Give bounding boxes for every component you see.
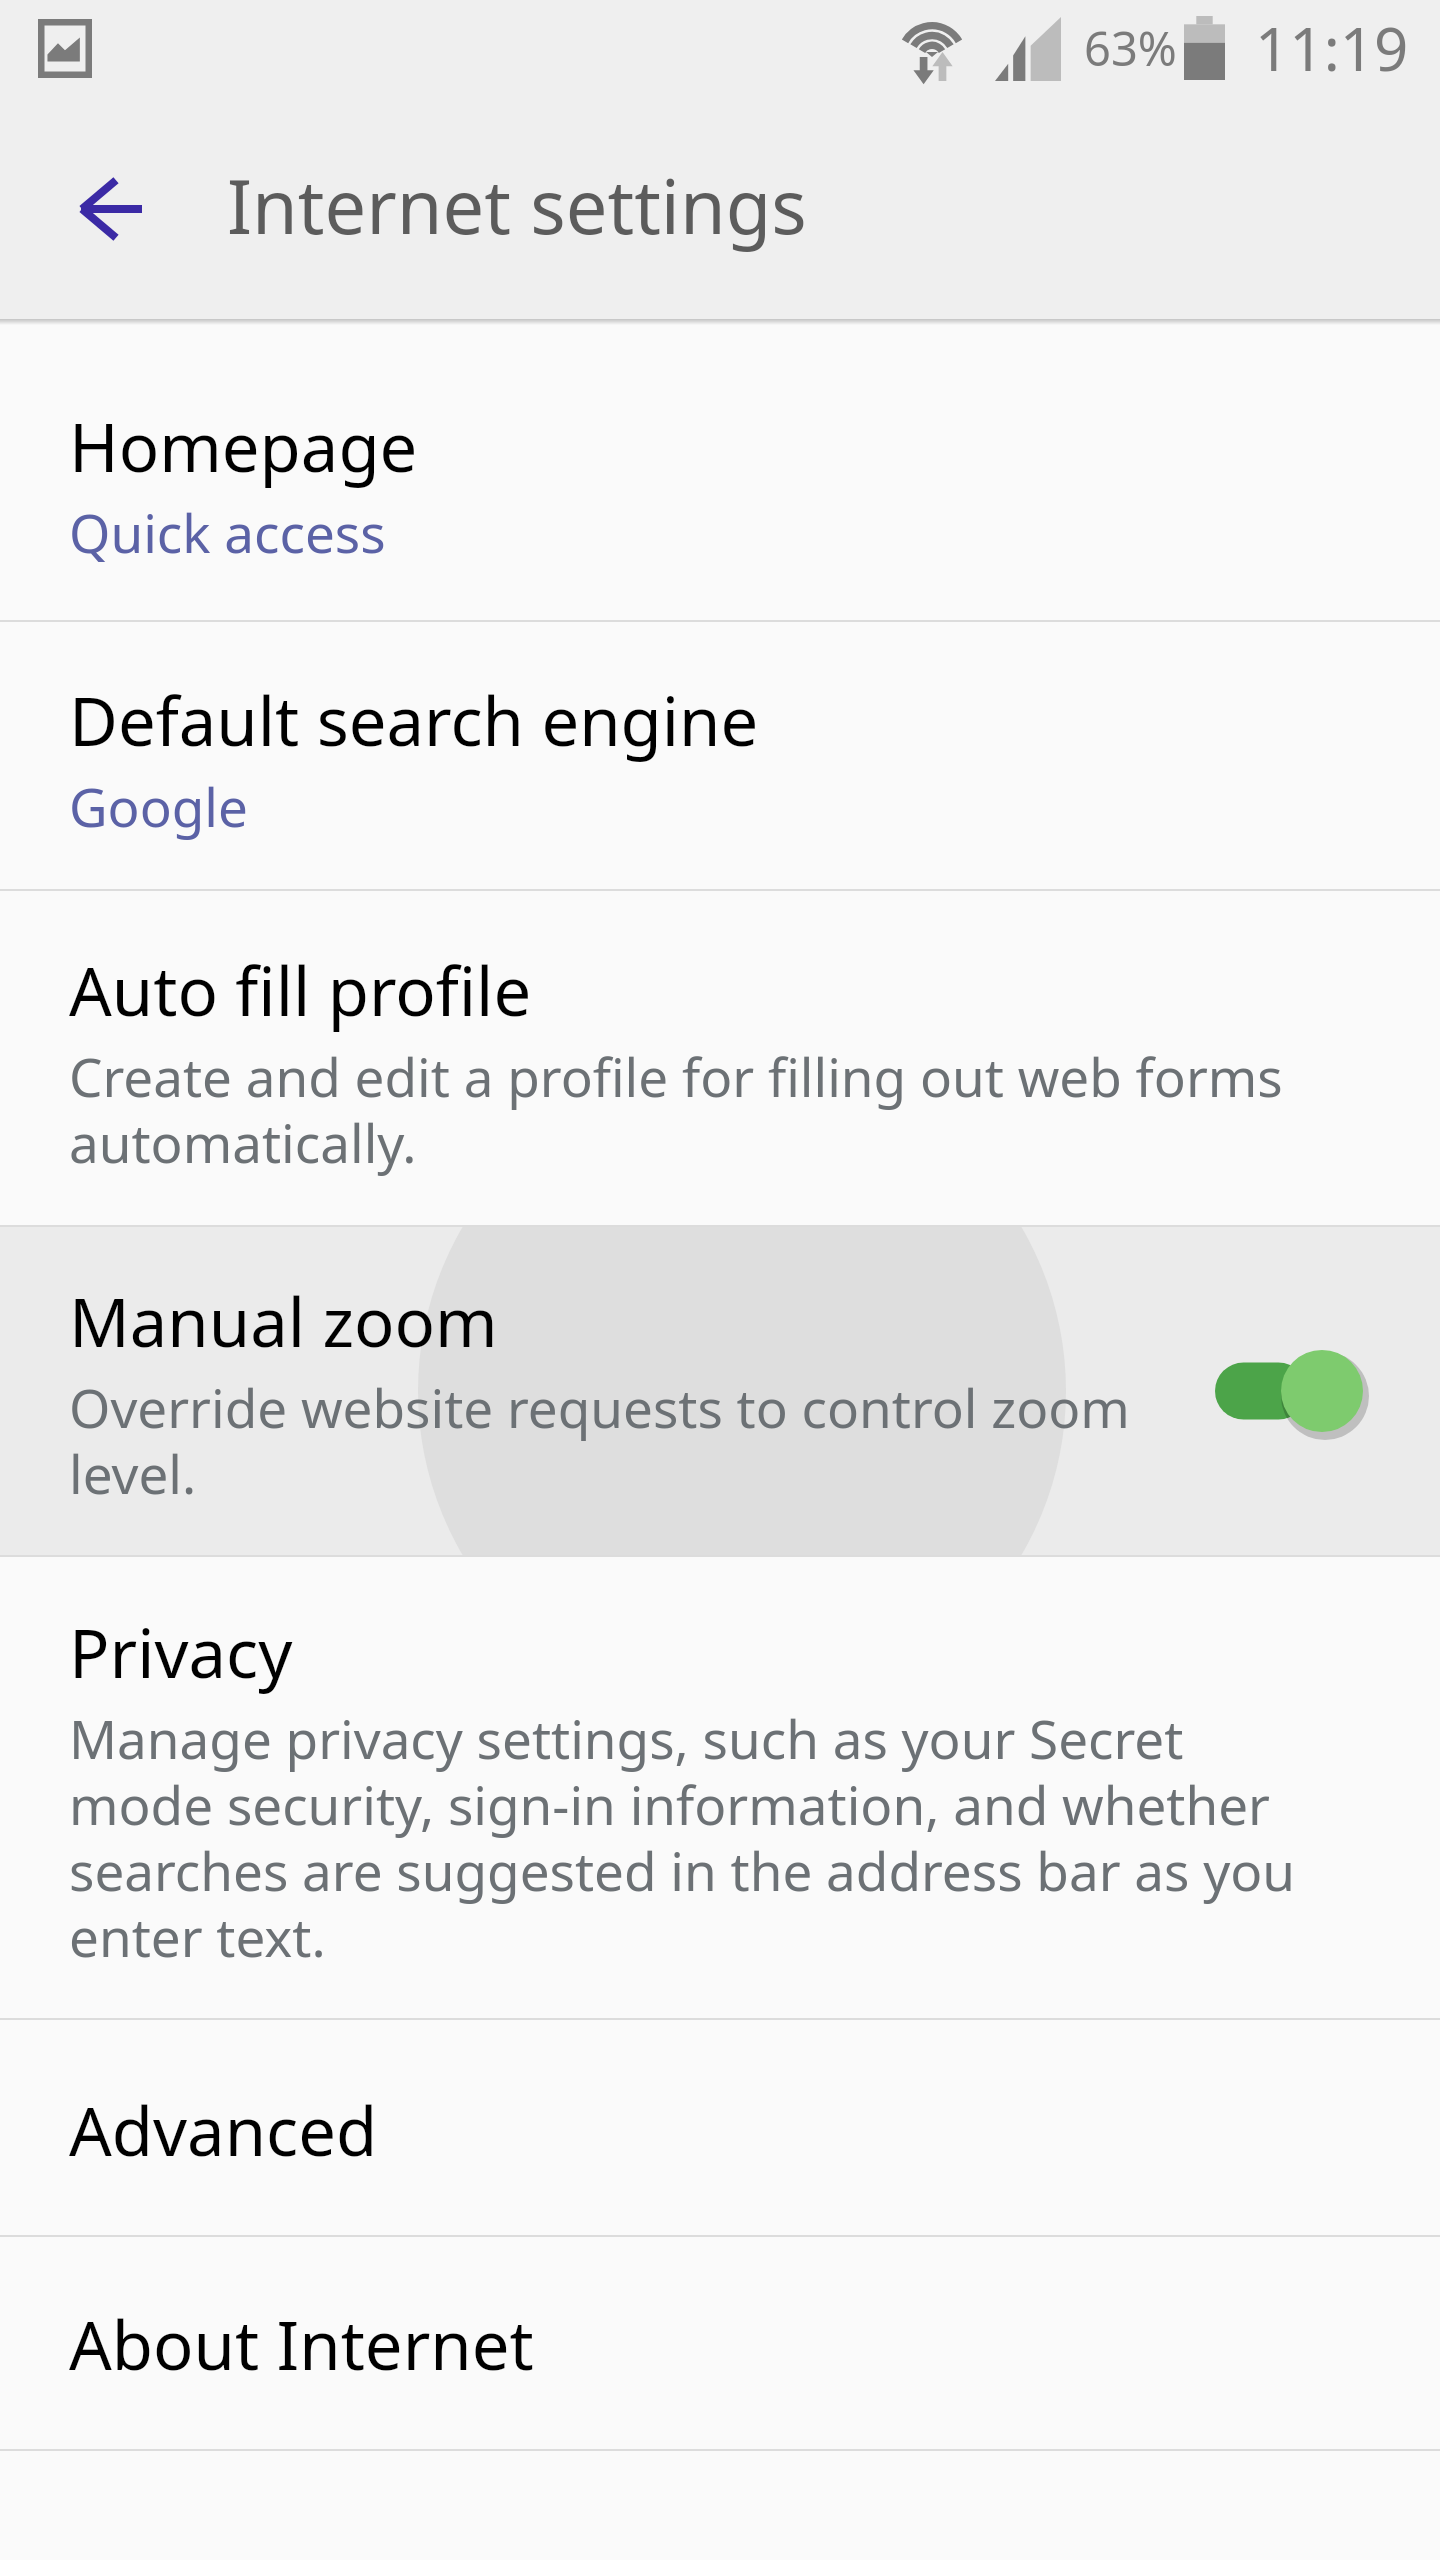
staticText: Manage privacy settings, such as your Se… [69, 1702, 1309, 1972]
button[interactable]: About Internet [0, 2237, 1440, 2449]
staticText: Quick access [69, 496, 386, 568]
button[interactable]: Navigate up [34, 134, 184, 284]
staticText: Privacy [69, 1606, 293, 1697]
button[interactable]: Manual zoom on [1215, 1336, 1365, 1446]
staticText: About Internet [69, 2298, 534, 2389]
button[interactable]: Homepage [0, 325, 1440, 620]
staticText: Default search engine [69, 674, 759, 765]
staticText: Internet settings [227, 155, 807, 256]
button[interactable]: Privacy [0, 1557, 1440, 2018]
button[interactable]: Auto fill profile [0, 891, 1440, 1225]
staticText: Manual zoom [69, 1275, 498, 1366]
button[interactable]: Default search engine [0, 622, 1440, 889]
staticText: 11:19 [1255, 7, 1409, 89]
staticText: 63% [1084, 16, 1177, 80]
staticText: Create and edit a profile for filling ou… [69, 1040, 1309, 1178]
staticText: Homepage [69, 400, 418, 491]
button[interactable]: Manual zoom [0, 1227, 1440, 1555]
button[interactable]: Advanced [0, 2020, 1440, 2235]
staticText: Auto fill profile [69, 944, 532, 1035]
staticText: Override website requests to control zoo… [69, 1371, 1169, 1509]
staticText: Google [69, 770, 248, 842]
staticText: Advanced [69, 2084, 378, 2175]
